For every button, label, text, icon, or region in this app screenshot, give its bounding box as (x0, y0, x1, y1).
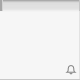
button[interactable]: Notifications (65, 64, 77, 76)
